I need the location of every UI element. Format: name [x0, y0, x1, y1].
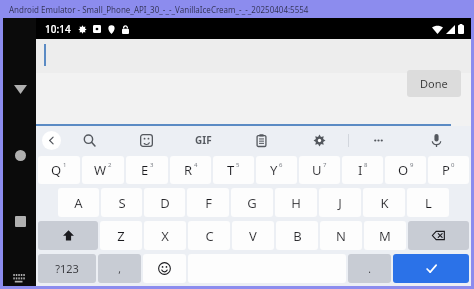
button[interactable]: Done [407, 70, 461, 97]
button[interactable]: Overview [7, 208, 33, 234]
button[interactable]: Q [38, 156, 80, 184]
button[interactable]: . [348, 254, 391, 283]
button[interactable]: GIF [175, 126, 232, 154]
button[interactable]: Keyboard [7, 270, 33, 286]
staticText: V [249, 227, 257, 245]
staticText: 1 [63, 161, 67, 169]
button[interactable]: N [320, 221, 362, 250]
staticText: M [379, 227, 391, 245]
staticText: Z [117, 227, 125, 245]
button[interactable]: Emoji [143, 254, 186, 283]
button[interactable]: Back [42, 131, 61, 150]
staticText: I [358, 161, 363, 179]
staticText: N [336, 227, 346, 245]
staticText: R [184, 161, 193, 179]
button[interactable]: , [98, 254, 141, 283]
button[interactable]: C [188, 221, 230, 250]
button[interactable]: F [187, 188, 229, 217]
button[interactable]: Back [7, 76, 33, 102]
button[interactable]: Clipboard [232, 126, 290, 154]
staticText: 10:14 [45, 22, 71, 36]
staticText: U [312, 161, 322, 179]
staticText: ?123 [55, 261, 79, 276]
staticText: A [74, 194, 83, 212]
staticText: Android Emulator - Small_Phone_API_30_-_… [9, 4, 309, 15]
button[interactable]: Backspace [408, 221, 469, 250]
staticText: L [425, 194, 432, 212]
button[interactable]: L [407, 188, 449, 217]
button[interactable]: Z [100, 221, 142, 250]
button[interactable]: X [144, 221, 186, 250]
button[interactable]: O [385, 156, 426, 184]
button[interactable]: E [126, 156, 168, 184]
staticText: Done [420, 76, 448, 91]
button[interactable]: Stickers [118, 126, 175, 154]
button[interactable]: More options [349, 126, 407, 154]
staticText: X [161, 227, 169, 245]
button[interactable]: W [82, 156, 124, 184]
button[interactable]: H [275, 188, 317, 217]
button[interactable]: ?123 [38, 254, 96, 283]
staticText: P [442, 161, 450, 179]
staticText: S [118, 194, 126, 212]
button[interactable]: Enter [393, 254, 469, 283]
button[interactable]: U [299, 156, 340, 184]
button[interactable]: G [231, 188, 273, 217]
button[interactable]: I [342, 156, 383, 184]
button[interactable]: Done [36, 39, 471, 126]
button[interactable]: V [232, 221, 274, 250]
staticText: K [380, 194, 389, 212]
button[interactable]: K [363, 188, 405, 217]
staticText: H [291, 194, 301, 212]
staticText: 2 [108, 161, 112, 169]
staticText: F [205, 194, 212, 212]
button[interactable]: M [364, 221, 406, 250]
staticText: J [338, 194, 342, 212]
button[interactable]: Home [7, 142, 33, 168]
staticText: 4 [194, 161, 198, 169]
staticText: Y [270, 161, 278, 179]
staticText: 9 [410, 161, 414, 169]
button[interactable]: J [319, 188, 361, 217]
staticText: GIF [195, 133, 212, 147]
button[interactable]: S [101, 188, 142, 217]
staticText: 8 [364, 161, 368, 169]
button[interactable]: P [428, 156, 469, 184]
button[interactable]: D [144, 188, 185, 217]
staticText: 6 [279, 161, 283, 169]
staticText: E [141, 161, 149, 179]
staticText: G [247, 194, 257, 212]
staticText: 5 [236, 161, 240, 169]
staticText: Q [51, 161, 62, 179]
button[interactable]: Voice input [407, 126, 465, 154]
staticText: D [160, 194, 170, 212]
staticText: W [94, 161, 107, 179]
staticText: O [398, 161, 409, 179]
button[interactable]: Search [61, 126, 118, 154]
staticText: 3 [150, 161, 154, 169]
button[interactable]: R [170, 156, 211, 184]
button[interactable]: Shift [38, 221, 98, 250]
button[interactable]: Settings [290, 126, 348, 154]
staticText: B [293, 227, 302, 245]
button[interactable]: A [58, 188, 99, 217]
button[interactable]: T [213, 156, 254, 184]
staticText: C [205, 227, 214, 245]
button[interactable]: B [276, 221, 318, 250]
staticText: 0 [451, 161, 455, 169]
staticText: . [368, 262, 371, 276]
button[interactable]: Y [256, 156, 297, 184]
staticText: T [227, 161, 235, 179]
staticText: , [118, 262, 121, 276]
staticText: 7 [323, 161, 327, 169]
